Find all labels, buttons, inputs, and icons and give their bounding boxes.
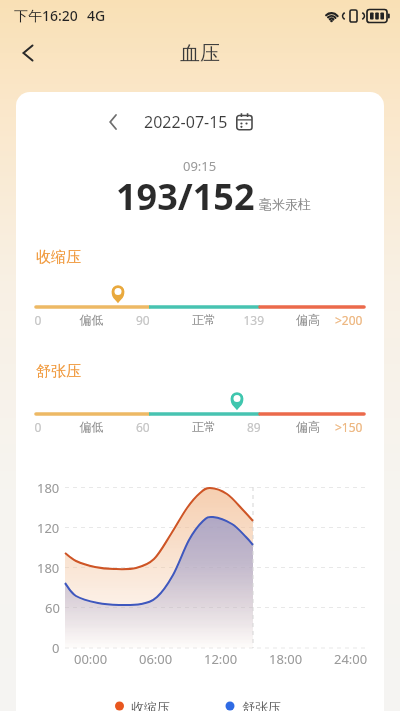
button[interactable] xyxy=(12,37,44,69)
staticText: 血压 xyxy=(180,41,220,66)
button[interactable]: 2022-07-15 xyxy=(108,110,253,134)
staticText: 4G xyxy=(87,6,106,25)
staticText: 收缩压 xyxy=(36,248,81,267)
staticText: 下午16:20 xyxy=(14,6,78,25)
staticText: 毫米汞柱 xyxy=(259,196,311,212)
staticText: 舒张压 xyxy=(36,362,81,381)
staticText: 2022-07-15 xyxy=(144,111,228,133)
staticText: 193/152 xyxy=(116,172,255,221)
staticText: 09:15 xyxy=(183,157,217,175)
